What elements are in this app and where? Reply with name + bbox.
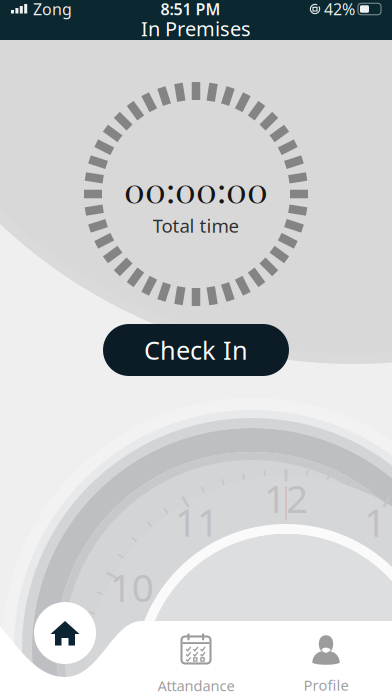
button[interactable]: Home bbox=[34, 602, 96, 664]
button[interactable]: Check In bbox=[103, 324, 289, 376]
staticText: Check In bbox=[144, 333, 248, 367]
staticText: In Premises bbox=[141, 15, 251, 42]
staticText: 12 bbox=[264, 472, 308, 524]
staticText: 42% bbox=[324, 0, 355, 20]
button[interactable]: Attandance bbox=[132, 632, 260, 696]
staticText: Attandance bbox=[157, 676, 234, 695]
staticText: Total time bbox=[152, 213, 239, 238]
staticText: 11 bbox=[175, 496, 219, 547]
staticText: Zong bbox=[33, 0, 72, 20]
staticText: 00:00:00 bbox=[124, 166, 268, 212]
staticText: Profile bbox=[303, 675, 348, 695]
staticText: 8:51 PM bbox=[160, 0, 220, 20]
staticText: 1 bbox=[364, 496, 386, 547]
staticText: 10 bbox=[110, 561, 154, 613]
button[interactable]: Profile bbox=[260, 632, 392, 696]
